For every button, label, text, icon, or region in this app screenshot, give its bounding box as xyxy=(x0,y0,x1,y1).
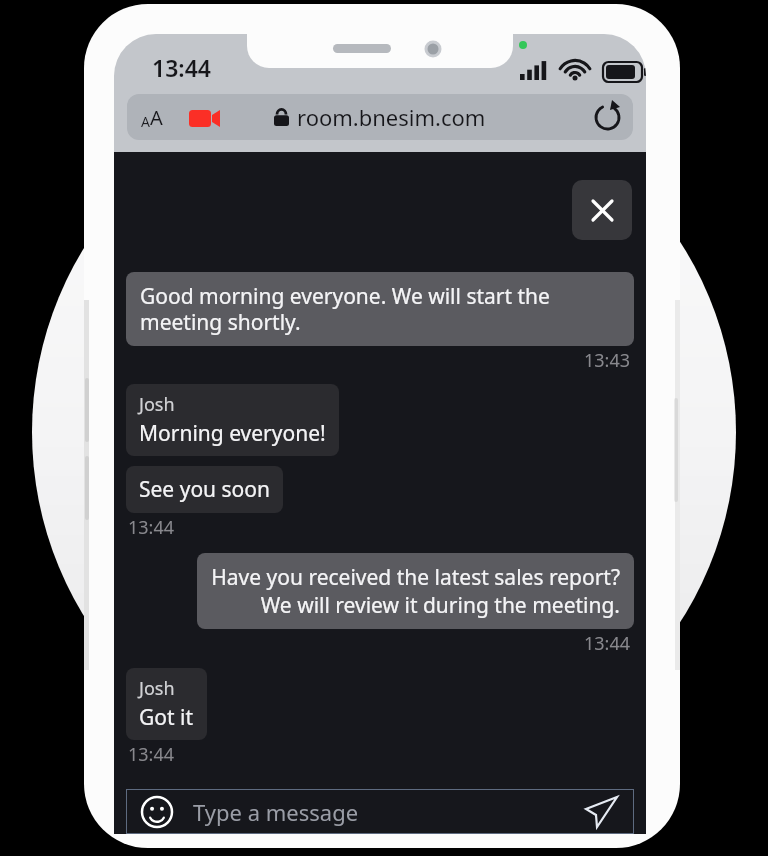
button[interactable]: Text size xyxy=(127,94,633,140)
staticText: 13:43 xyxy=(584,348,631,373)
staticText: Josh xyxy=(139,392,175,417)
button[interactable]: See you soon xyxy=(126,466,283,513)
button[interactable]: Text size xyxy=(141,104,163,131)
button[interactable]: Video call xyxy=(187,99,223,135)
button[interactable]: Josh xyxy=(126,384,339,456)
button[interactable]: Emoji xyxy=(126,789,634,834)
staticText: 13:44 xyxy=(152,52,211,83)
button[interactable]: Reload xyxy=(589,99,625,135)
staticText: See you soon xyxy=(139,475,270,504)
staticText: 13:44 xyxy=(128,742,175,767)
staticText: Good morning everyone. We will start the… xyxy=(140,282,620,336)
button[interactable]: Good morning everyone. We will start the… xyxy=(126,272,634,346)
staticText: Josh xyxy=(139,676,175,701)
staticText: Have you received the latest sales repor… xyxy=(211,563,620,619)
button[interactable]: Josh xyxy=(126,668,207,740)
staticText: 13:44 xyxy=(584,631,631,656)
button[interactable]: Close xyxy=(572,180,632,240)
staticText: Type a message xyxy=(193,797,359,827)
staticText: A xyxy=(150,104,163,131)
button[interactable]: Have you received the latest sales repor… xyxy=(197,553,634,629)
button[interactable]: Emoji xyxy=(140,795,174,829)
staticText: 13:44 xyxy=(128,515,175,540)
button[interactable]: Send xyxy=(584,794,620,830)
staticText: Got it xyxy=(139,703,194,732)
staticText: A xyxy=(141,112,150,131)
staticText: Morning everyone! xyxy=(139,419,326,448)
staticText: room.bnesim.com xyxy=(297,102,486,132)
